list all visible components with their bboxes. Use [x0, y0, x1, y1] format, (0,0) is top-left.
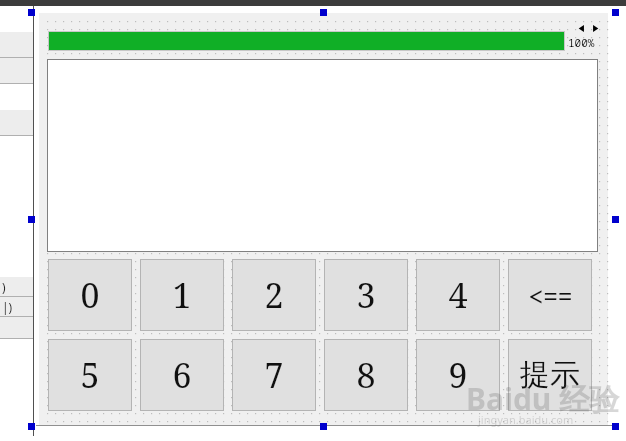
- button[interactable]: 3: [325, 260, 407, 330]
- staticText: 2: [264, 272, 284, 318]
- button[interactable]: |): [0, 297, 33, 316]
- button[interactable]: 2: [233, 260, 315, 330]
- button[interactable]: 1: [141, 260, 223, 330]
- staticText: 8: [356, 352, 376, 398]
- staticText: 3: [356, 272, 376, 318]
- button[interactable]: 4: [417, 260, 499, 330]
- staticText: 4: [448, 272, 468, 318]
- button[interactable]: 9: [417, 340, 499, 410]
- button[interactable]: Previous: [575, 23, 587, 34]
- staticText: 9: [448, 352, 468, 398]
- button[interactable]: 0: [49, 260, 131, 330]
- staticText: 0: [80, 272, 100, 318]
- button[interactable]: 6: [141, 340, 223, 410]
- staticText: Baidu 经验: [466, 378, 620, 419]
- staticText: 100%: [568, 35, 595, 50]
- button[interactable]: 8: [325, 340, 407, 410]
- staticText: ): [2, 279, 6, 295]
- button[interactable]: 7: [233, 340, 315, 410]
- staticText: jingyan.baidu.com: [478, 412, 574, 427]
- staticText: 1: [172, 272, 192, 318]
- button[interactable]: ): [0, 277, 33, 296]
- button[interactable]: <==: [509, 260, 591, 330]
- staticText: 提示: [520, 356, 580, 394]
- staticText: <==: [528, 278, 573, 313]
- staticText: 6: [172, 352, 192, 398]
- button[interactable]: 提示: [509, 340, 591, 410]
- staticText: 5: [80, 352, 100, 398]
- staticText: |): [2, 299, 13, 315]
- staticText: 7: [264, 352, 284, 398]
- button[interactable]: 5: [49, 340, 131, 410]
- button[interactable]: Next: [589, 23, 601, 34]
